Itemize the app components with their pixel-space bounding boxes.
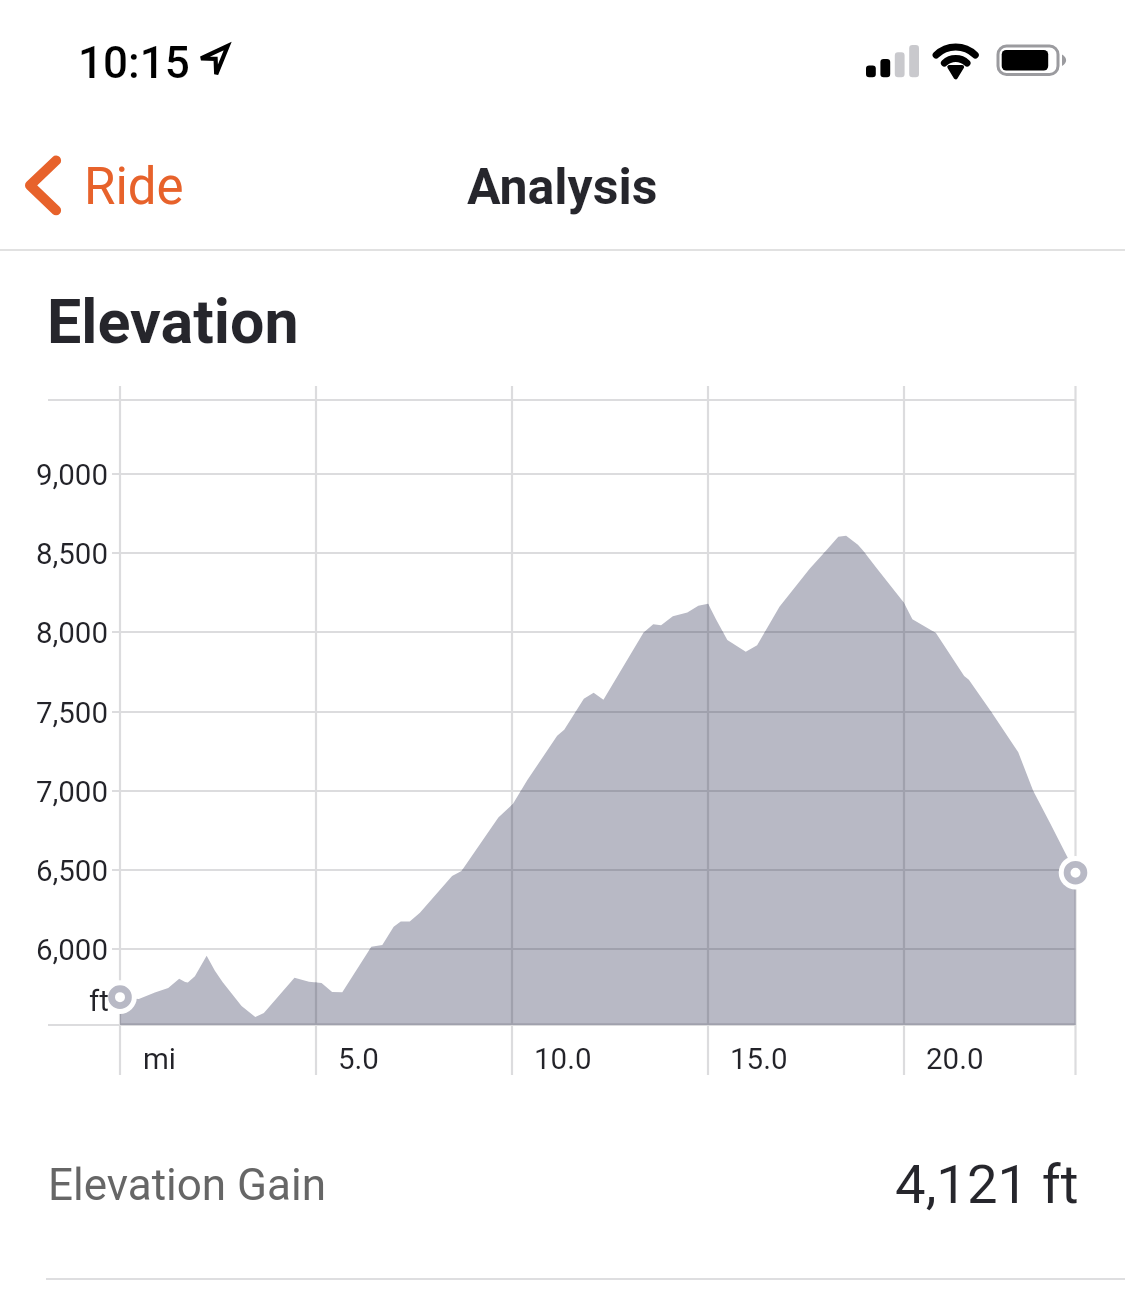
staticText: Elevation Gain <box>48 1159 326 1211</box>
staticText: 6,000 <box>0 933 108 968</box>
button[interactable]: Elevation Gain <box>0 1108 1125 1280</box>
staticText: 9,000 <box>0 458 108 493</box>
staticText: Ride <box>84 157 184 217</box>
staticText: 10.0 <box>534 1042 592 1077</box>
staticText: 8,500 <box>0 537 108 572</box>
button[interactable]: Back to Ride <box>16 142 196 230</box>
staticText: mi <box>143 1042 177 1077</box>
staticText: Analysis <box>467 158 658 217</box>
staticText: 6,500 <box>0 854 108 889</box>
staticText: 10:15 <box>78 37 190 89</box>
staticText: 15.0 <box>730 1042 788 1077</box>
staticText: 20.0 <box>926 1042 984 1077</box>
staticText: 5.0 <box>338 1042 379 1077</box>
staticText: Elevation <box>47 286 299 357</box>
staticText: 8,000 <box>0 616 108 651</box>
staticText: ft <box>89 984 109 1019</box>
staticText: 7,000 <box>0 775 108 810</box>
staticText: 4,121 ft <box>895 1152 1079 1216</box>
staticText: 7,500 <box>0 696 108 731</box>
